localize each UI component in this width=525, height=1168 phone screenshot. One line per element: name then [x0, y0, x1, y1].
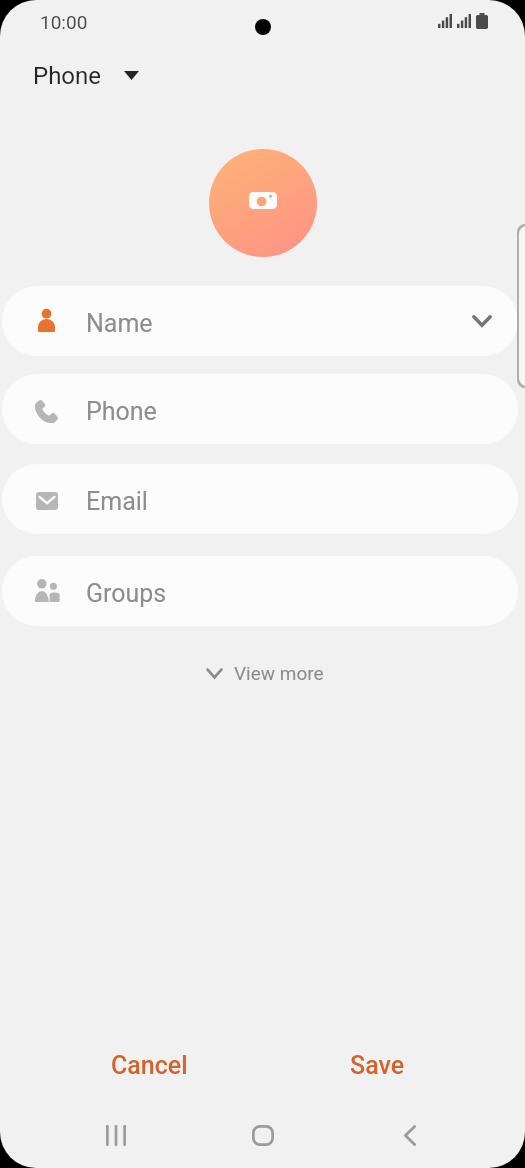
- button[interactable]: Recent apps: [66, 1105, 166, 1166]
- button[interactable]: Phone: [2, 374, 518, 444]
- staticText: Name: [86, 309, 153, 338]
- button[interactable]: Groups: [2, 556, 518, 626]
- staticText: Phone: [86, 397, 157, 426]
- button[interactable]: Name: [2, 286, 518, 356]
- button[interactable]: Save: [336, 1040, 419, 1090]
- button[interactable]: Back: [360, 1105, 460, 1166]
- staticText: Email: [86, 487, 148, 516]
- staticText: 10:00: [40, 11, 88, 33]
- button[interactable]: Add photo: [209, 149, 317, 257]
- staticText: View more: [234, 662, 324, 684]
- staticText: Cancel: [111, 1051, 188, 1080]
- button[interactable]: Home: [213, 1105, 313, 1166]
- button[interactable]: Phone: [0, 51, 159, 101]
- button[interactable]: Cancel: [97, 1040, 202, 1090]
- button[interactable]: Email: [2, 464, 518, 534]
- staticText: Save: [350, 1051, 405, 1080]
- staticText: Groups: [86, 579, 167, 608]
- button[interactable]: View more: [194, 652, 336, 694]
- staticText: Phone: [33, 62, 102, 90]
